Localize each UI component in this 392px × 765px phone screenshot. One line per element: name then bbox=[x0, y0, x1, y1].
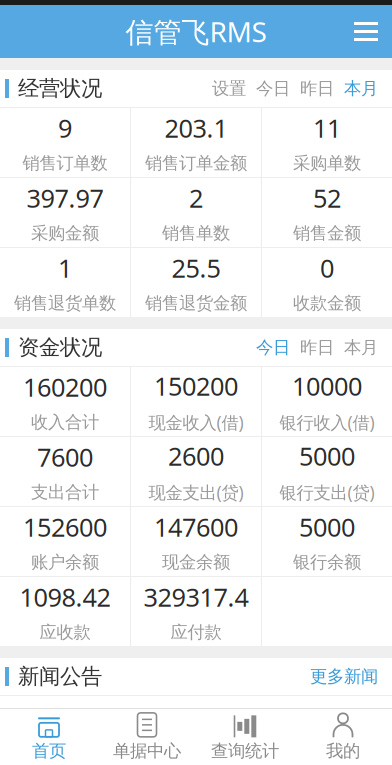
staticText: 银行支出(贷) bbox=[279, 481, 374, 504]
button[interactable]: 菜单 bbox=[340, 5, 392, 58]
button[interactable]: 今日 bbox=[251, 70, 295, 107]
staticText: 5000 bbox=[299, 510, 355, 544]
staticText: 经营状况 bbox=[18, 75, 102, 102]
staticText: 首页 bbox=[32, 740, 66, 762]
staticText: 我的 bbox=[326, 740, 360, 762]
button[interactable]: 昨日 bbox=[295, 329, 339, 366]
button[interactable]: 本月 bbox=[339, 329, 383, 366]
staticText: 现金余额 bbox=[162, 552, 230, 573]
button[interactable]: 我的 bbox=[294, 709, 392, 765]
staticText: 25.5 bbox=[171, 251, 220, 285]
staticText: 0 bbox=[320, 251, 334, 285]
staticText: 150200 bbox=[154, 369, 238, 403]
staticText: 收入合计 bbox=[31, 412, 99, 433]
staticText: 银行余额 bbox=[293, 552, 361, 573]
staticText: 单据中心 bbox=[113, 740, 181, 762]
staticText: 7600 bbox=[37, 440, 93, 474]
button[interactable]: 今日 bbox=[251, 329, 295, 366]
staticText: 销售金额 bbox=[293, 223, 361, 244]
staticText: 查询统计 bbox=[211, 740, 279, 762]
button[interactable]: 单据中心 bbox=[98, 709, 196, 765]
staticText: 10000 bbox=[292, 369, 362, 403]
staticText: 销售单数 bbox=[162, 223, 230, 244]
staticText: 账户余额 bbox=[31, 552, 99, 573]
button[interactable]: 更多新闻 bbox=[305, 658, 383, 695]
staticText: 本月 bbox=[344, 78, 378, 99]
staticText: 今日 bbox=[256, 78, 290, 99]
staticText: 5000 bbox=[299, 439, 355, 473]
staticText: 支出合计 bbox=[31, 482, 99, 503]
button[interactable]: 首页 bbox=[0, 709, 98, 765]
staticText: 9 bbox=[58, 111, 72, 145]
staticText: 147600 bbox=[154, 510, 238, 544]
staticText: 资金状况 bbox=[18, 334, 102, 361]
staticText: 销售退货单数 bbox=[14, 293, 116, 314]
staticText: 收款金额 bbox=[293, 293, 361, 314]
staticText: 1098.42 bbox=[19, 580, 110, 614]
staticText: 应收款 bbox=[39, 622, 90, 643]
staticText: 昨日 bbox=[300, 337, 334, 358]
staticText: 52 bbox=[313, 181, 341, 215]
staticText: 采购金额 bbox=[31, 223, 99, 244]
staticText: 采购单数 bbox=[293, 153, 361, 174]
staticText: 应付款 bbox=[170, 622, 221, 643]
staticText: 设置 bbox=[212, 78, 246, 99]
staticText: 本月 bbox=[344, 337, 378, 358]
staticText: 销售退货金额 bbox=[145, 293, 247, 314]
staticText: 397.97 bbox=[26, 181, 103, 215]
staticText: 更多新闻 bbox=[310, 666, 378, 687]
staticText: 2600 bbox=[168, 439, 224, 473]
staticText: 新闻公告 bbox=[18, 663, 102, 690]
staticText: 现金收入(借) bbox=[148, 411, 243, 434]
button[interactable]: 本月 bbox=[339, 70, 383, 107]
button[interactable]: 设置 bbox=[207, 70, 251, 107]
button[interactable]: 查询统计 bbox=[196, 709, 294, 765]
staticText: 今日 bbox=[256, 337, 290, 358]
staticText: 152600 bbox=[23, 510, 107, 544]
staticText: 329317.4 bbox=[143, 580, 248, 614]
staticText: 1 bbox=[58, 251, 72, 285]
staticText: 11 bbox=[313, 111, 341, 145]
staticText: 160200 bbox=[23, 370, 107, 404]
staticText: 现金支出(贷) bbox=[148, 481, 243, 504]
staticText: 销售订单金额 bbox=[145, 153, 247, 174]
button[interactable]: 昨日 bbox=[295, 70, 339, 107]
staticText: 信管飞RMS bbox=[125, 13, 266, 50]
staticText: 销售订单数 bbox=[22, 153, 107, 174]
staticText: 203.1 bbox=[164, 111, 227, 145]
staticText: 昨日 bbox=[300, 78, 334, 99]
staticText: 银行收入(借) bbox=[279, 411, 374, 434]
staticText: 2 bbox=[189, 181, 203, 215]
